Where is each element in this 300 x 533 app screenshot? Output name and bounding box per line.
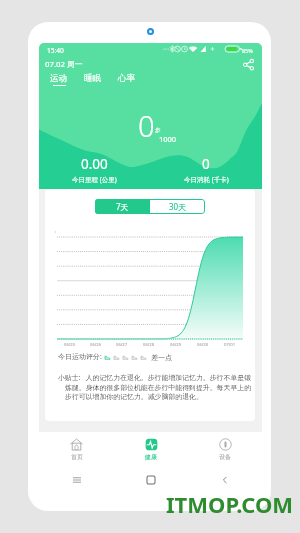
- staticText: 首页: [71, 453, 83, 461]
- staticText: 07.02 周一: [45, 59, 83, 70]
- button[interactable]: Back: [188, 467, 262, 493]
- staticText: 06/30: [197, 342, 209, 348]
- staticText: 30天: [169, 201, 187, 212]
- staticText: 健康: [145, 453, 157, 461]
- button[interactable]: Home: [114, 467, 188, 493]
- staticText: 85%: [242, 47, 253, 54]
- staticText: 今日消耗 (千卡): [184, 175, 229, 184]
- button[interactable]: Share: [240, 56, 257, 73]
- button[interactable]: 设备: [188, 432, 262, 467]
- staticText: 07/01: [224, 342, 236, 348]
- staticText: 步: [155, 127, 161, 134]
- staticText: 15:40: [47, 46, 64, 55]
- staticText: 7天: [116, 201, 129, 212]
- staticText: 小贴士:: [58, 373, 81, 382]
- button[interactable]: 睡眠: [76, 73, 110, 86]
- staticText: 运动: [50, 73, 68, 84]
- button[interactable]: 30天: [150, 199, 205, 214]
- staticText: 0: [138, 106, 155, 145]
- button[interactable]: 心率: [110, 73, 144, 86]
- staticText: 今日里程 (公里): [72, 175, 117, 184]
- staticText: 今日运动评分:: [58, 352, 102, 362]
- button[interactable]: 首页: [39, 432, 114, 467]
- staticText: 06/29: [170, 342, 182, 348]
- staticText: 06/28: [143, 342, 155, 348]
- button[interactable]: Recents: [39, 467, 114, 493]
- staticText: 0: [202, 155, 210, 173]
- staticText: ITMOP.COM: [166, 489, 294, 519]
- staticText: 设备: [219, 453, 231, 461]
- staticText: 1000: [159, 134, 177, 144]
- staticText: 06/26: [90, 342, 102, 348]
- staticText: 差一点: [151, 353, 172, 362]
- staticText: 心率: [118, 73, 136, 84]
- staticText: 06/25: [64, 342, 76, 348]
- staticText: 人的记忆力在退化。步行能增加记忆力。步行不单是锻炼腿。身体的很多部位机能在步行中…: [65, 373, 255, 401]
- staticText: 0.00: [81, 155, 108, 173]
- button[interactable]: 7天: [95, 199, 150, 214]
- staticText: 睡眠: [84, 73, 102, 84]
- button[interactable]: 运动: [42, 73, 76, 86]
- button[interactable]: 健康: [114, 432, 188, 467]
- staticText: 06/27: [116, 342, 128, 348]
